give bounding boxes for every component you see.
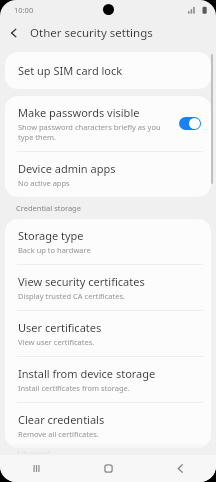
staticText: Install certificates from storage. (18, 383, 130, 393)
staticText: Set up SIM card lock (18, 63, 123, 78)
button[interactable]: View security certificates (5, 265, 211, 310)
button[interactable]: Device admin apps (5, 152, 211, 197)
button[interactable]: Home (72, 463, 144, 474)
staticText: Show password characters briefly as you … (18, 122, 173, 142)
staticText: Make passwords visible (18, 105, 140, 120)
staticText: View security certificates (18, 274, 145, 289)
button[interactable]: Storage type (5, 219, 211, 264)
button[interactable]: Back (144, 463, 216, 474)
staticText: Install from device storage (18, 366, 156, 381)
button[interactable]: Back (0, 19, 28, 47)
button[interactable]: Recent apps (0, 463, 72, 474)
staticText: Clear credentials (18, 412, 105, 427)
staticText: Back up to hardware (18, 245, 91, 255)
button[interactable]: Make passwords visible toggle (179, 117, 201, 130)
button[interactable]: Set up SIM card lock (5, 52, 211, 89)
staticText: Remove all certificates. (18, 429, 99, 439)
staticText: Advanced (16, 448, 51, 455)
button[interactable]: User certificates (5, 311, 211, 356)
staticText: Credential storage (16, 203, 81, 213)
button[interactable]: Make passwords visible (5, 96, 211, 151)
staticText: User certificates (18, 320, 102, 335)
staticText: Other security settings (30, 25, 153, 41)
button[interactable]: Install from device storage (5, 357, 211, 402)
staticText: Device admin apps (18, 161, 116, 176)
staticText: 10:00 (14, 5, 34, 15)
button[interactable]: Clear credentials (5, 403, 211, 448)
staticText: Storage type (18, 228, 84, 243)
staticText: No active apps (18, 178, 70, 188)
staticText: View user certificates. (18, 337, 95, 347)
staticText: Display trusted CA certificates. (18, 291, 125, 301)
